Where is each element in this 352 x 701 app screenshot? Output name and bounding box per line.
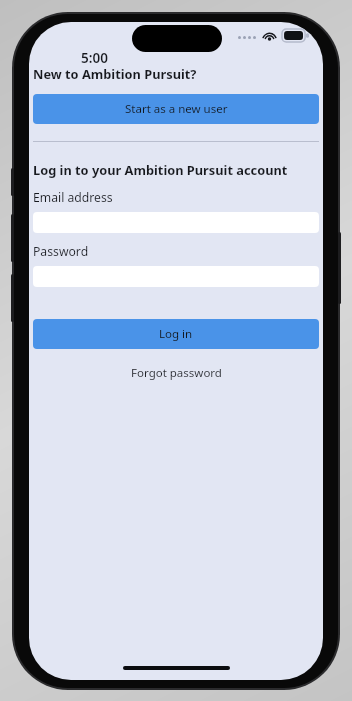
staticText: Forgot password	[131, 365, 222, 381]
staticText: Log in to your Ambition Pursuit account	[33, 161, 288, 178]
staticText: New to Ambition Pursuit?	[33, 65, 197, 82]
staticText: Start as a new user	[125, 101, 228, 117]
staticText: Log in	[159, 326, 193, 342]
button[interactable]: Log in	[33, 319, 319, 349]
staticText: Email address	[33, 189, 113, 206]
staticText: Password	[33, 243, 89, 260]
staticText: 5:00	[81, 49, 108, 67]
button[interactable]: Forgot password	[33, 364, 319, 382]
button[interactable]: Start as a new user	[33, 94, 319, 124]
